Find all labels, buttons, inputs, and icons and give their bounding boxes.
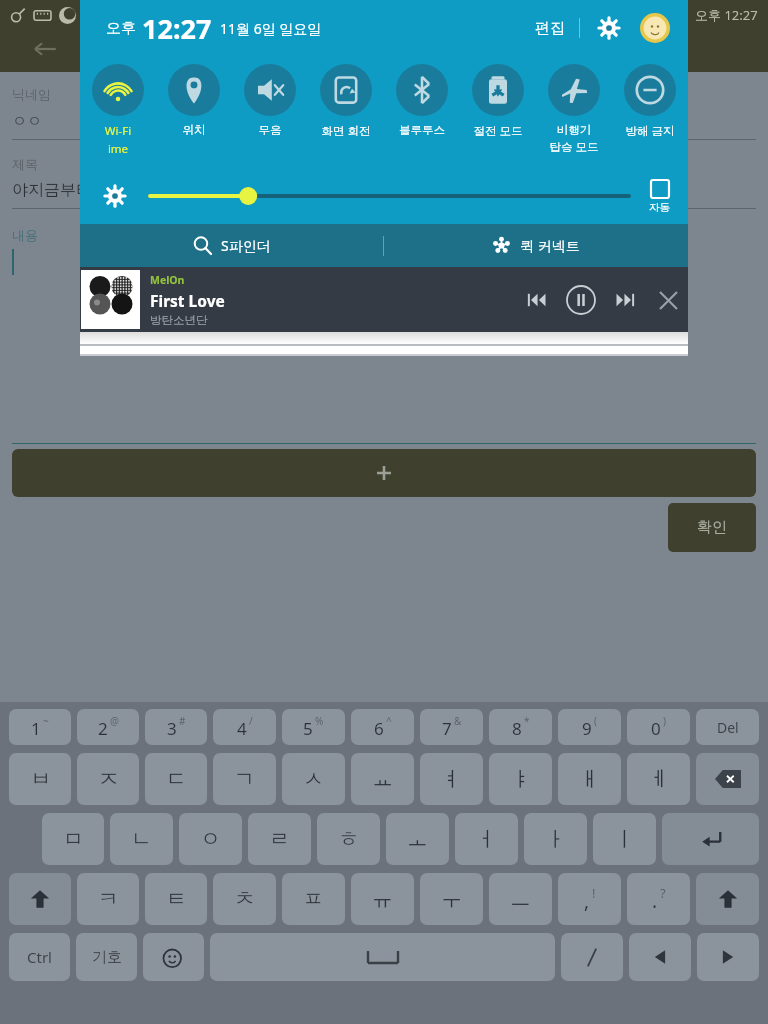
staticText: ㄱ (234, 766, 255, 792)
staticText: 7 (442, 717, 452, 740)
button[interactable]: . (627, 873, 690, 925)
button[interactable]: ㅛ (351, 753, 414, 805)
button[interactable]: ㅡ (489, 873, 552, 925)
button[interactable]: 자동 (649, 179, 670, 214)
staticText: ! (592, 884, 596, 902)
button[interactable]: ㅁ (42, 813, 104, 865)
button[interactable]: Language (561, 933, 623, 981)
staticText: ㅐ (579, 766, 600, 792)
button[interactable]: Space (210, 933, 555, 981)
button[interactable]: Settings (592, 11, 626, 45)
button[interactable]: 기호 (76, 933, 137, 981)
staticText: 내용 (12, 227, 38, 243)
button[interactable]: ㅓ (455, 813, 518, 865)
button[interactable]: ㄹ (248, 813, 311, 865)
staticText: 비행기 (536, 123, 612, 137)
staticText: 6 (374, 717, 384, 740)
button[interactable]: ㅜ (420, 873, 483, 925)
button[interactable]: Close (650, 282, 686, 318)
button[interactable]: 편집 (529, 13, 571, 44)
button[interactable]: Backspace (696, 753, 759, 805)
button[interactable]: Next (606, 282, 642, 318)
staticText: ~ (43, 714, 49, 728)
button[interactable]: 블루투스 (384, 56, 460, 168)
staticText: , (584, 888, 590, 914)
button[interactable]: Move cursor left (629, 933, 691, 981)
button[interactable]: 6 (351, 709, 414, 745)
button[interactable]: Previous (520, 282, 556, 318)
button[interactable]: ㅍ (282, 873, 345, 925)
staticText: ㄹ (269, 826, 290, 852)
button[interactable]: 방해 금지 (612, 56, 688, 168)
staticText: 방해 금지 (612, 123, 688, 139)
button[interactable]: ㅔ (627, 753, 690, 805)
button[interactable]: ㅈ (77, 753, 139, 805)
button[interactable]: 3 (145, 709, 207, 745)
button[interactable]: 9 (558, 709, 621, 745)
staticText: * (524, 714, 530, 728)
button[interactable]: ㄴ (110, 813, 173, 865)
button[interactable]: ㅂ (9, 753, 71, 805)
staticText: 오후 12:27 (695, 6, 758, 24)
button[interactable]: ㅇ (179, 813, 242, 865)
staticText: 제목 (12, 156, 38, 172)
staticText: S파인더 (221, 236, 271, 255)
button[interactable]: 7 (420, 709, 483, 745)
button[interactable]: 5 (282, 709, 345, 745)
button[interactable]: 무음 (232, 56, 308, 168)
staticText: . (652, 888, 658, 914)
button[interactable]: ㅏ (524, 813, 587, 865)
staticText: ( (594, 714, 597, 728)
button[interactable]: ㅌ (145, 873, 207, 925)
button[interactable]: Back (26, 30, 64, 68)
button[interactable]: Move cursor right (697, 933, 759, 981)
button[interactable]: ㅐ (558, 753, 621, 805)
button[interactable]: 확인 (668, 503, 756, 552)
staticText: 11월 6일 일요일 (220, 19, 322, 38)
button[interactable]: 1 (9, 709, 71, 745)
staticText: 3 (167, 717, 177, 740)
staticText: ㅎ (338, 826, 359, 852)
button[interactable]: , (558, 873, 621, 925)
button[interactable]: Enter (662, 813, 759, 865)
button[interactable]: 비행기 (536, 56, 612, 168)
button[interactable]: Ctrl (9, 933, 70, 981)
button[interactable]: ㅎ (317, 813, 380, 865)
button[interactable]: Add (12, 449, 756, 497)
button[interactable]: Wi-Fi (80, 56, 156, 168)
button[interactable]: 2 (77, 709, 139, 745)
button[interactable]: Pause (560, 279, 602, 321)
button[interactable]: ㄱ (213, 753, 276, 805)
button[interactable]: Del (696, 709, 759, 745)
button[interactable]: 절전 모드 (460, 56, 536, 168)
button[interactable]: ㄷ (145, 753, 207, 805)
button[interactable]: ㅋ (77, 873, 139, 925)
button[interactable]: User profile (638, 11, 672, 45)
staticText: ㅇ (200, 826, 221, 852)
button[interactable]: Shift (9, 873, 71, 925)
button[interactable]: MelOn (80, 267, 688, 332)
staticText: ㅈ (98, 766, 119, 792)
staticText: ㄷ (166, 766, 187, 792)
button[interactable]: S파인더 (80, 224, 383, 267)
button[interactable]: 8 (489, 709, 552, 745)
button[interactable]: ㅗ (386, 813, 449, 865)
button[interactable]: ㅠ (351, 873, 414, 925)
button[interactable]: 화면 회전 (308, 56, 384, 168)
button[interactable]: 퀵 커넥트 (384, 224, 688, 267)
button[interactable]: ㅅ (282, 753, 345, 805)
button[interactable]: ㅣ (593, 813, 656, 865)
button[interactable]: Emoji and voice input (143, 933, 204, 981)
button[interactable]: ㅕ (420, 753, 483, 805)
button[interactable]: ㅊ (213, 873, 276, 925)
button[interactable]: Shift (696, 873, 759, 925)
staticText: 12:27 (142, 10, 212, 47)
button[interactable]: ㅑ (489, 753, 552, 805)
button[interactable]: 4 (213, 709, 276, 745)
staticText: ㅁ (63, 826, 84, 852)
button[interactable]: 0 (627, 709, 690, 745)
staticText: ㄴ (131, 826, 152, 852)
button[interactable]: 위치 (156, 56, 232, 168)
button[interactable]: Brightness (150, 183, 629, 209)
staticText: ㅍ (303, 886, 324, 912)
